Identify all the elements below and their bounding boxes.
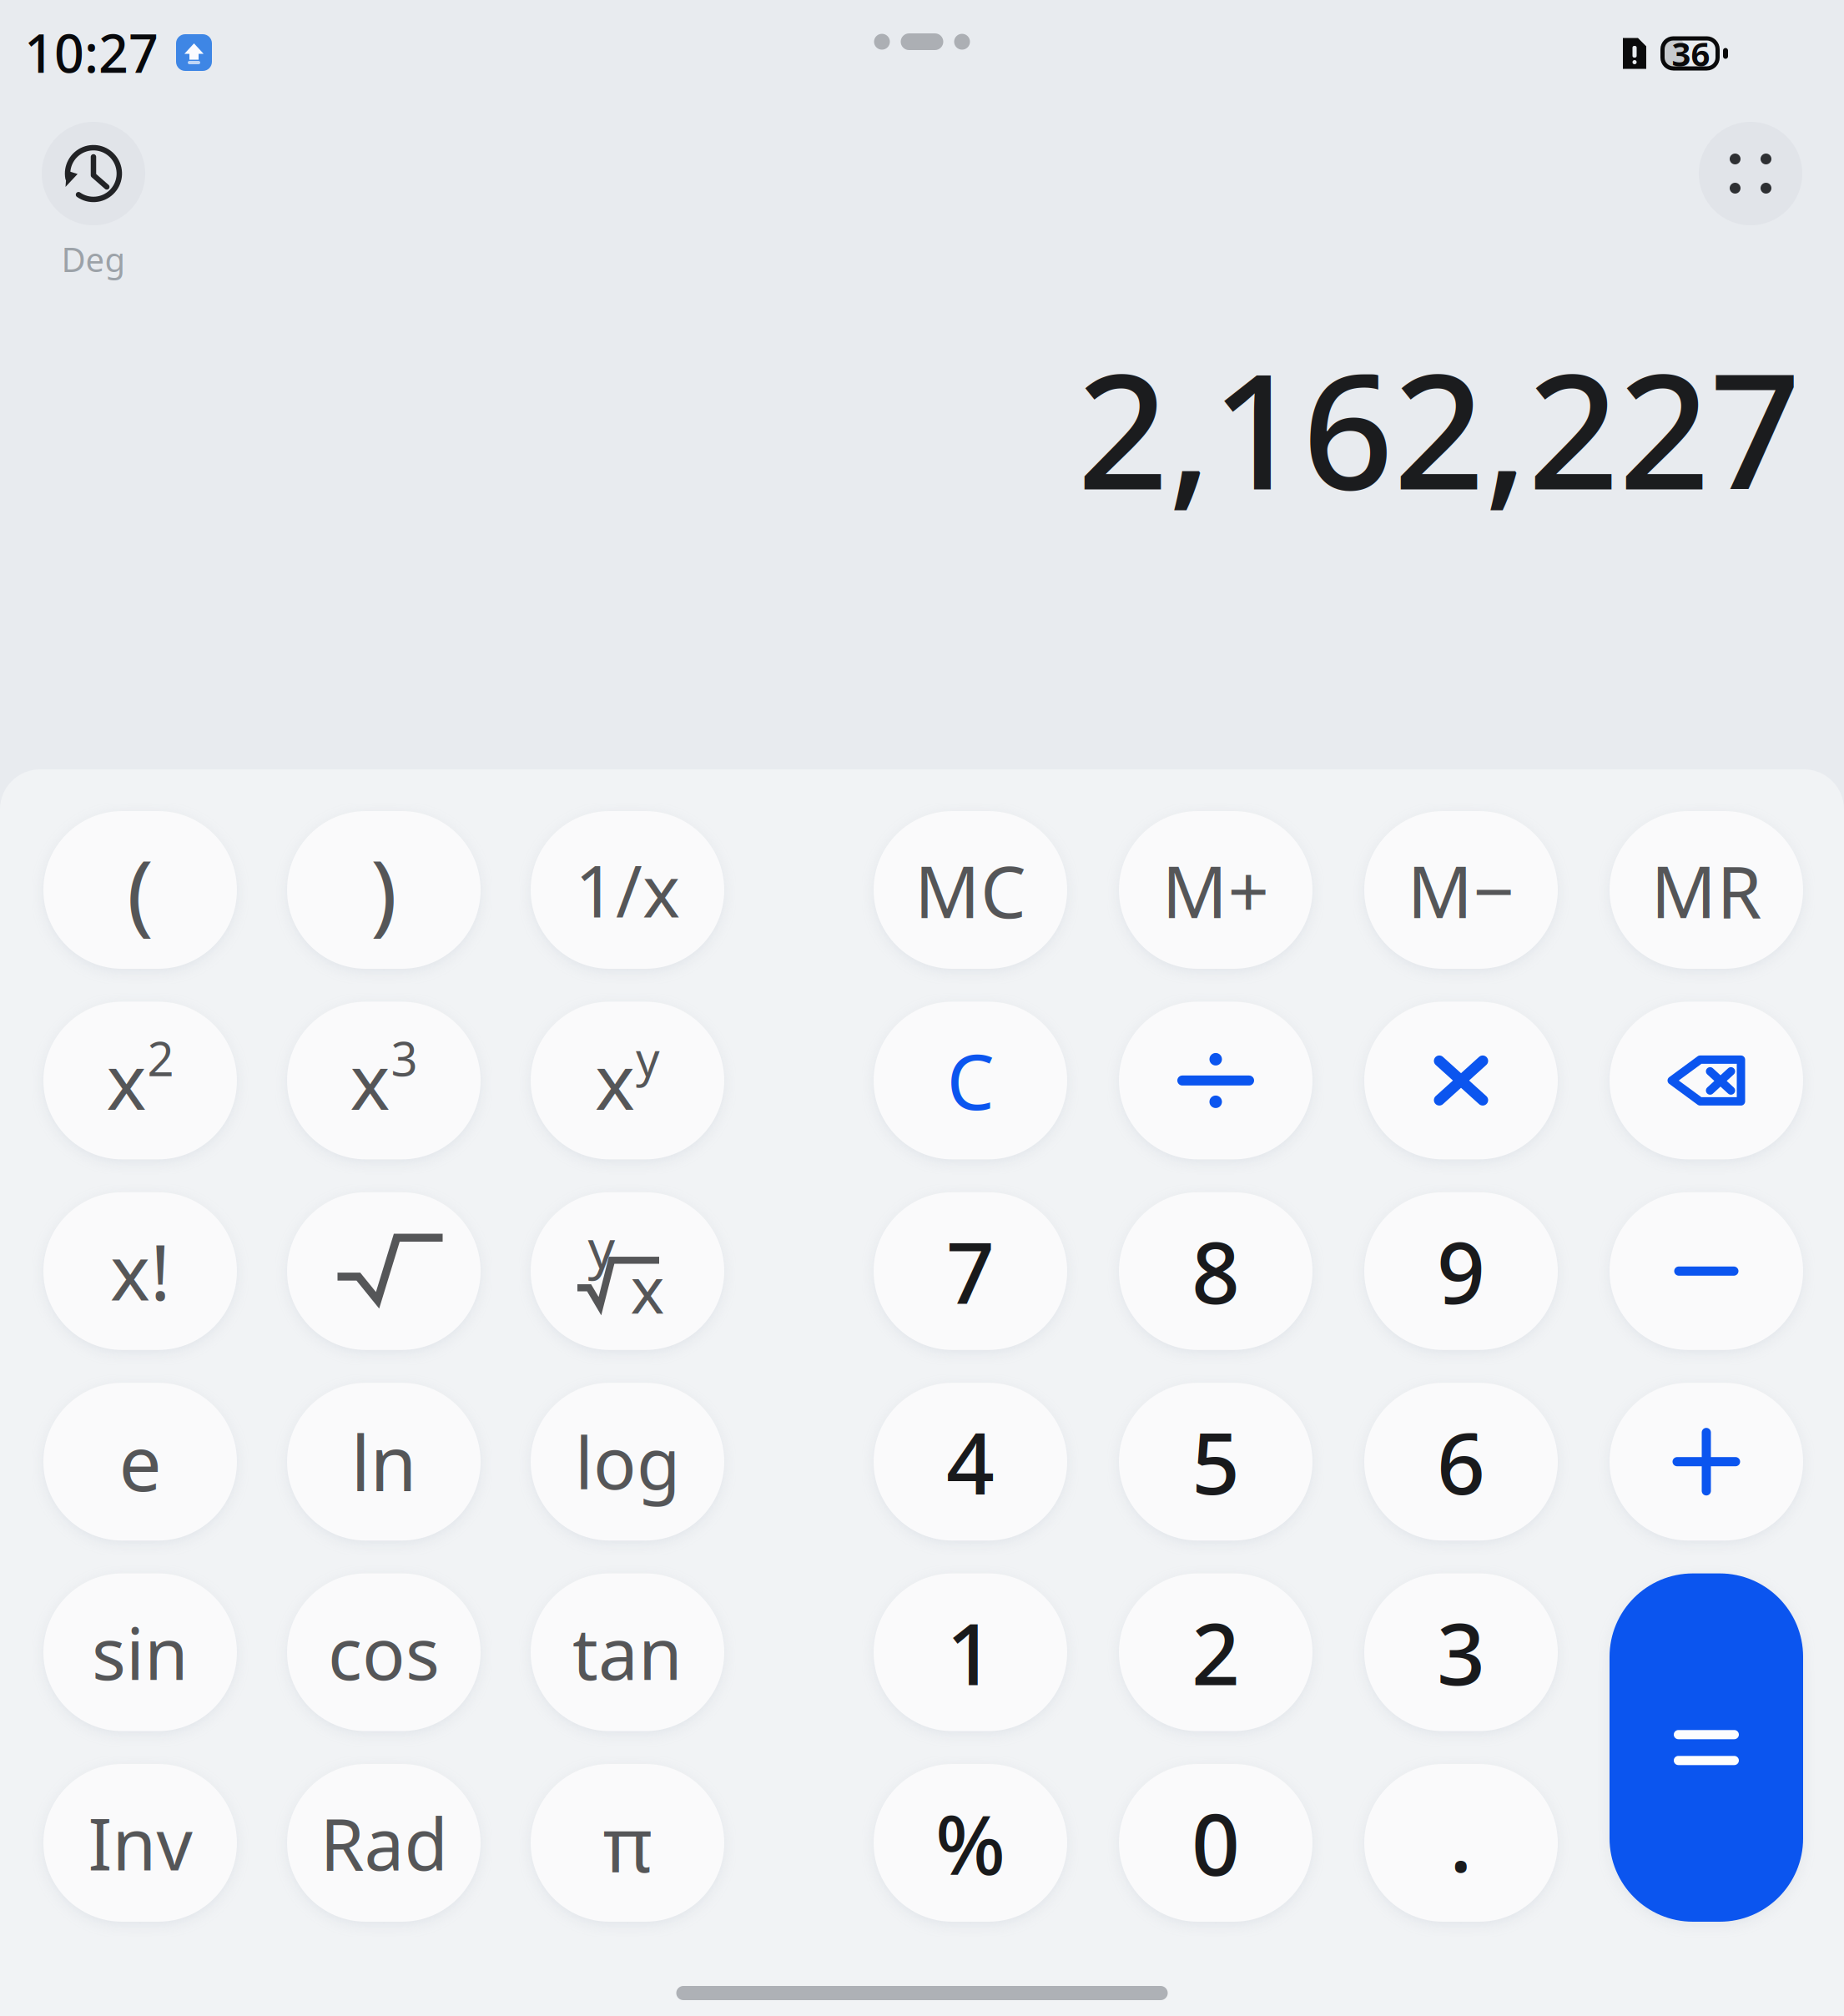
staticText: C bbox=[947, 1030, 994, 1131]
staticText: ( bbox=[127, 831, 154, 949]
button[interactable]: x! bbox=[43, 1192, 237, 1350]
button[interactable]: ln bbox=[287, 1383, 481, 1541]
button[interactable]: Equals bbox=[1610, 1573, 1803, 1922]
staticText: 1 bbox=[946, 1596, 995, 1708]
button[interactable]: π bbox=[531, 1764, 724, 1922]
button[interactable]: History, Degrees bbox=[23, 122, 164, 281]
staticText: e bbox=[119, 1411, 161, 1512]
button[interactable]: Plus bbox=[1610, 1383, 1803, 1541]
staticText: 9 bbox=[1437, 1215, 1485, 1327]
staticText: % bbox=[935, 1788, 1005, 1898]
button[interactable]: x bbox=[531, 1002, 724, 1159]
button[interactable]: Rad bbox=[287, 1764, 481, 1922]
staticText: . bbox=[1449, 1783, 1473, 1896]
button[interactable]: 1 bbox=[874, 1573, 1067, 1731]
button[interactable]: cos bbox=[287, 1573, 481, 1731]
staticText: x! bbox=[110, 1221, 170, 1321]
staticText: x bbox=[350, 1030, 390, 1131]
staticText: 10:27 bbox=[24, 18, 159, 87]
button[interactable]: 0 bbox=[1119, 1764, 1312, 1922]
button[interactable]: Square root bbox=[287, 1192, 481, 1350]
button[interactable]: M+ bbox=[1119, 811, 1312, 969]
button[interactable]: Inv bbox=[43, 1764, 237, 1922]
staticText: 8 bbox=[1192, 1215, 1240, 1327]
staticText: 2 bbox=[1192, 1596, 1240, 1708]
button[interactable]: 6 bbox=[1364, 1383, 1558, 1541]
staticText: x bbox=[106, 1030, 146, 1131]
staticText: Inv bbox=[88, 1796, 192, 1890]
staticText: x bbox=[595, 1030, 635, 1131]
button[interactable]: x bbox=[287, 1002, 481, 1159]
button[interactable]: Delete bbox=[1610, 1002, 1803, 1159]
button[interactable]: 3 bbox=[1364, 1573, 1558, 1731]
button[interactable]: ) bbox=[287, 811, 481, 969]
staticText: Deg bbox=[61, 237, 126, 281]
staticText: cos bbox=[328, 1605, 440, 1699]
button[interactable]: Multiply bbox=[1364, 1002, 1558, 1159]
staticText: 36 bbox=[1672, 31, 1710, 76]
button[interactable]: MR bbox=[1610, 811, 1803, 969]
staticText: M− bbox=[1407, 842, 1515, 938]
button[interactable]: M− bbox=[1364, 811, 1558, 969]
button[interactable]: Minus bbox=[1610, 1192, 1803, 1350]
staticText: log bbox=[575, 1414, 680, 1509]
button[interactable]: More options bbox=[1699, 122, 1802, 225]
button[interactable]: 1/x bbox=[531, 811, 724, 969]
staticText: ) bbox=[370, 831, 397, 949]
staticText: y bbox=[636, 1027, 660, 1089]
staticText: MC bbox=[914, 842, 1026, 938]
button[interactable]: 8 bbox=[1119, 1192, 1312, 1350]
button[interactable]: tan bbox=[531, 1573, 724, 1731]
button[interactable]: 4 bbox=[874, 1383, 1067, 1541]
staticText: MR bbox=[1651, 842, 1762, 938]
button[interactable]: 2 bbox=[1119, 1573, 1312, 1731]
staticText: M+ bbox=[1162, 842, 1270, 938]
staticText: x bbox=[630, 1246, 665, 1332]
button[interactable]: x bbox=[43, 1002, 237, 1159]
staticText: 5 bbox=[1192, 1406, 1240, 1518]
staticText: π bbox=[603, 1793, 652, 1893]
button[interactable]: log bbox=[531, 1383, 724, 1541]
button[interactable]: Nth root bbox=[531, 1192, 724, 1350]
staticText: 2,162,227 bbox=[1077, 322, 1801, 533]
staticText: Rad bbox=[320, 1796, 448, 1890]
button[interactable]: sin bbox=[43, 1573, 237, 1731]
staticText: sin bbox=[92, 1605, 189, 1699]
button[interactable]: . bbox=[1364, 1764, 1558, 1922]
staticText: 2 bbox=[147, 1027, 174, 1089]
staticText: 4 bbox=[946, 1406, 995, 1518]
button[interactable]: Divide bbox=[1119, 1002, 1312, 1159]
button[interactable]: e bbox=[43, 1383, 237, 1541]
staticText: y bbox=[588, 1212, 615, 1283]
button[interactable]: 7 bbox=[874, 1192, 1067, 1350]
button[interactable]: MC bbox=[874, 811, 1067, 969]
staticText: ln bbox=[351, 1411, 417, 1512]
staticText: 7 bbox=[946, 1215, 995, 1327]
button[interactable]: 5 bbox=[1119, 1383, 1312, 1541]
button[interactable]: % bbox=[874, 1764, 1067, 1922]
staticText: 1/x bbox=[575, 843, 680, 937]
staticText: 3 bbox=[1437, 1596, 1485, 1708]
button[interactable]: ( bbox=[43, 811, 237, 969]
staticText: 3 bbox=[391, 1027, 418, 1089]
staticText: 0 bbox=[1192, 1787, 1240, 1899]
staticText: tan bbox=[572, 1605, 683, 1699]
staticText: 6 bbox=[1437, 1406, 1485, 1518]
button[interactable]: C bbox=[874, 1002, 1067, 1159]
button[interactable]: 9 bbox=[1364, 1192, 1558, 1350]
